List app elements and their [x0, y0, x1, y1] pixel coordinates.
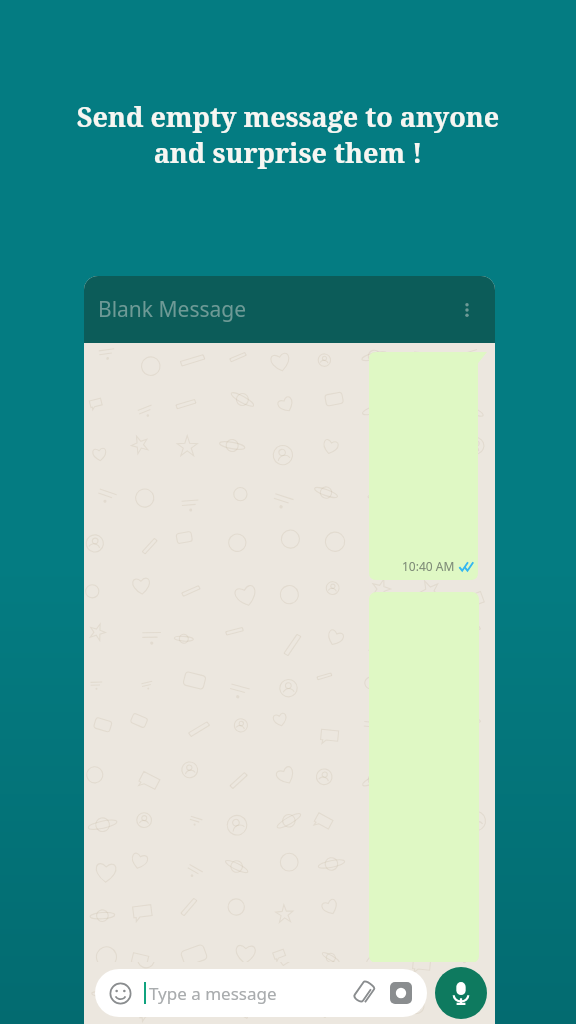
button[interactable]: Attach [351, 980, 377, 1006]
staticText: Blank Message [98, 295, 247, 324]
button[interactable]: Type a message [95, 969, 427, 1017]
button[interactable]: Camera [389, 981, 413, 1005]
staticText: Type a message [149, 982, 277, 1005]
button[interactable]: More options [445, 288, 489, 332]
staticText: 10:40 AM [402, 558, 455, 574]
button[interactable]: Record voice message [435, 967, 487, 1019]
button[interactable]: 10:40 AM [369, 352, 487, 580]
staticText: Send empty message to anyone and surpris… [20, 98, 556, 171]
